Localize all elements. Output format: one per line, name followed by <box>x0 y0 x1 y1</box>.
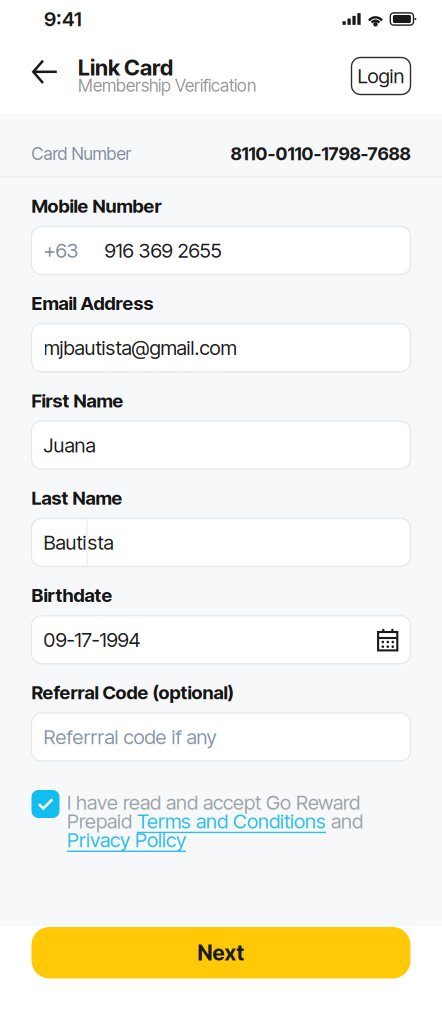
staticText: Terms and Conditions <box>137 809 326 833</box>
button[interactable]: I have read and accept Go Reward <box>31 790 410 849</box>
staticText: +63 <box>43 238 78 263</box>
staticText: Mobile Number <box>31 195 161 217</box>
staticText: sta <box>88 530 114 554</box>
staticText: Privacy Policy <box>67 828 186 852</box>
staticText: Prepaid <box>67 809 137 833</box>
button[interactable]: Next <box>31 927 410 978</box>
staticText: Membership Verification <box>78 75 256 96</box>
staticText: 09-17-1994 <box>43 628 140 652</box>
staticText: Next <box>197 940 244 966</box>
staticText: Referral Code (optional) <box>31 681 233 704</box>
staticText: Bauti <box>43 530 86 554</box>
staticText: Card Number <box>31 143 131 164</box>
staticText: 9:41 <box>44 7 82 31</box>
staticText: Referrral code if any <box>43 725 216 749</box>
staticText: First Name <box>31 389 123 412</box>
staticText: Birthdate <box>31 584 112 606</box>
staticText: I have read and accept Go Reward <box>67 790 360 814</box>
staticText: and <box>326 809 363 833</box>
button[interactable]: Back <box>32 56 65 96</box>
button[interactable]: Login <box>351 57 410 94</box>
staticText: Email Address <box>31 292 153 315</box>
staticText: 8110-0110-1798-7688 <box>230 143 410 164</box>
staticText: Last Name <box>31 487 122 509</box>
staticText: Link Card <box>78 54 173 81</box>
staticText: 916 369 2655 <box>104 238 221 263</box>
staticText: Juana <box>43 433 95 457</box>
staticText: Login <box>357 64 404 88</box>
staticText: mjbautista@gmail.com <box>43 336 236 360</box>
